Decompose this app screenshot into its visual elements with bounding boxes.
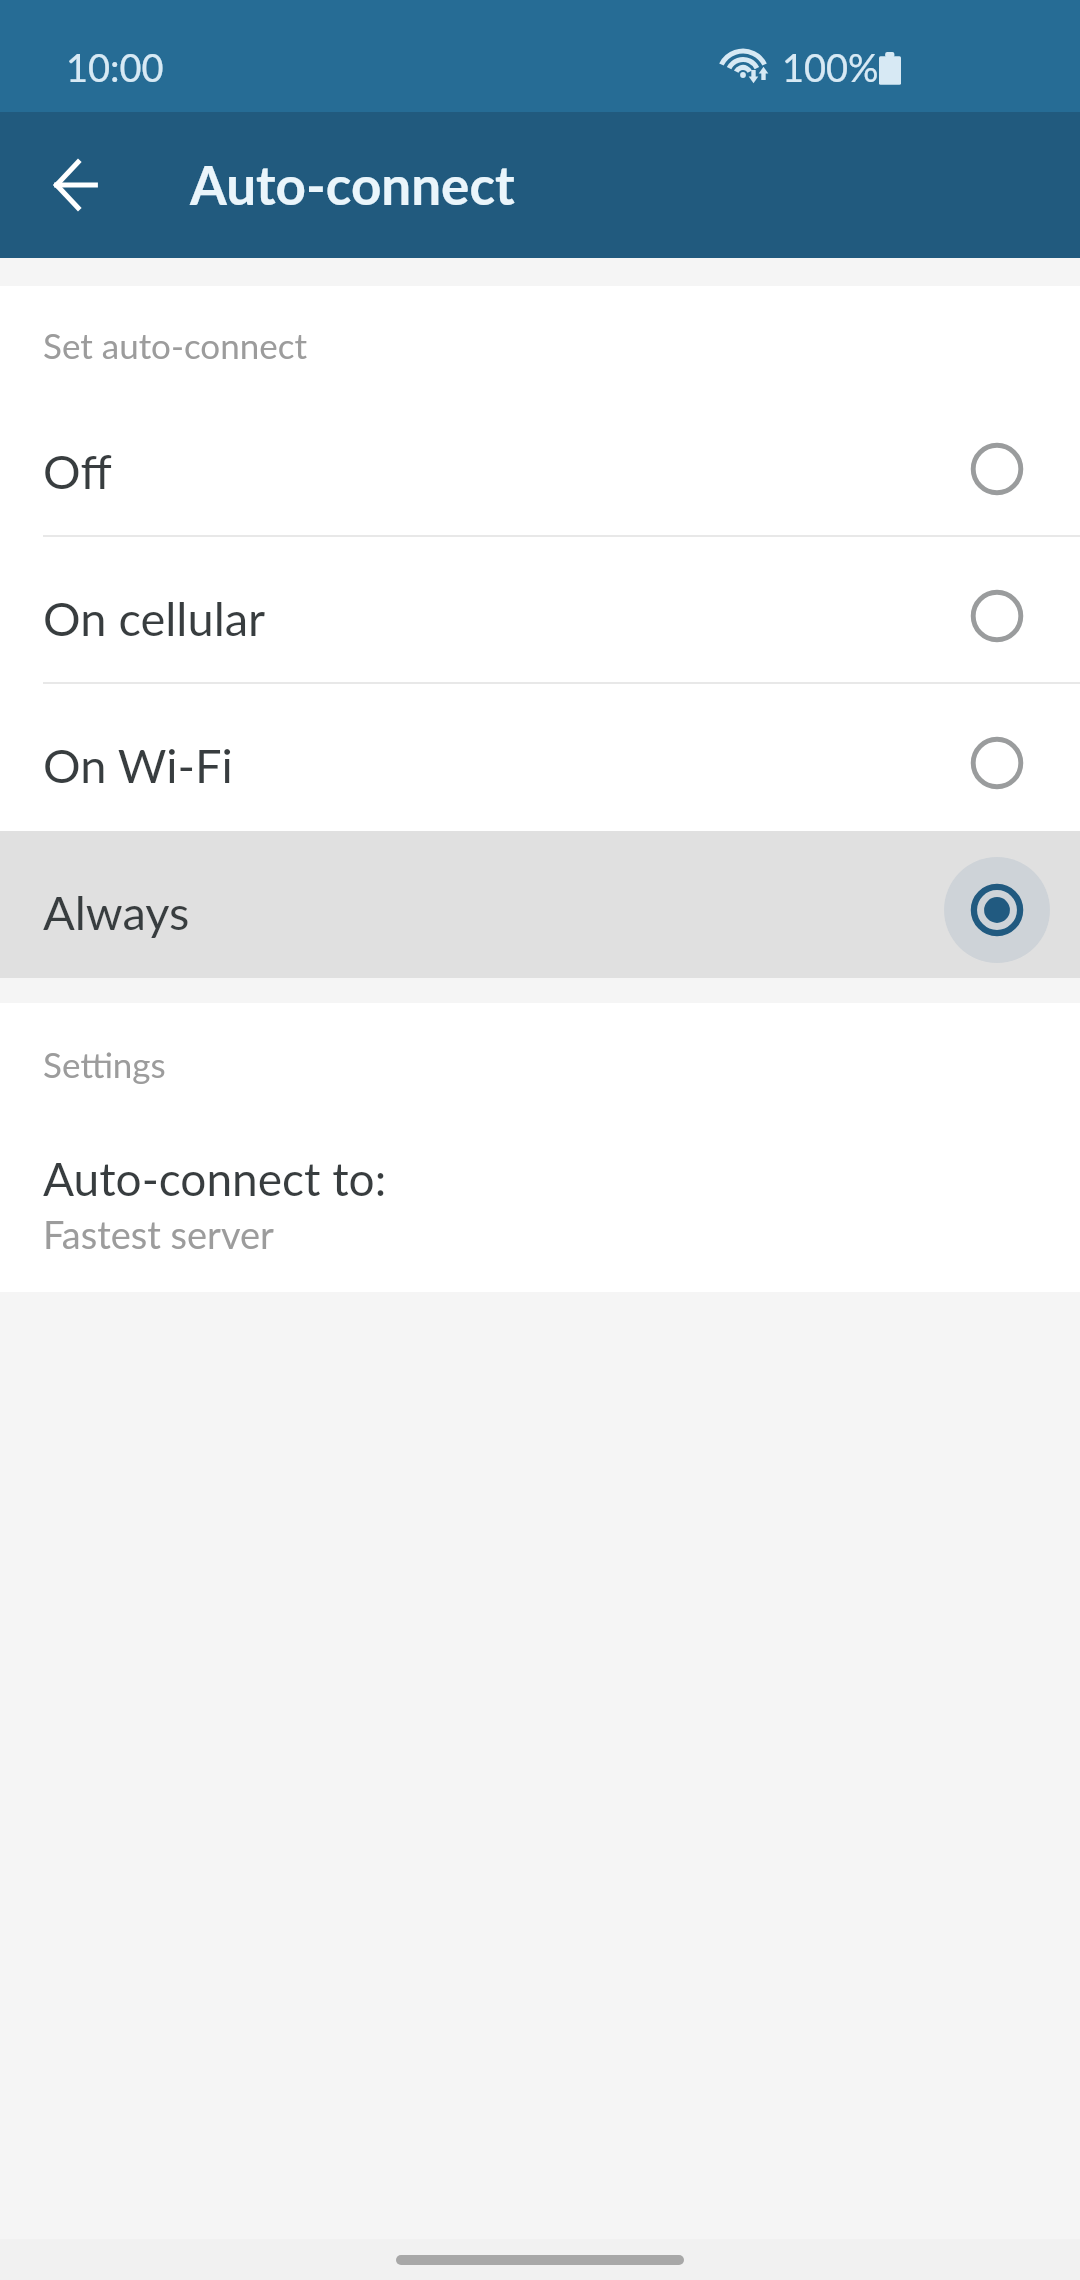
button[interactable]: Always <box>0 831 1080 978</box>
staticText: Off <box>43 443 112 499</box>
staticText: 10:00 <box>66 44 164 90</box>
staticText: Auto-connect <box>190 153 515 217</box>
staticText: On Wi-Fi <box>43 737 233 793</box>
staticText: Fastest server <box>43 1211 274 1257</box>
staticText: Settings <box>43 1043 166 1085</box>
button[interactable]: On cellular <box>0 537 1080 684</box>
staticText: Set auto-connect <box>43 324 308 366</box>
staticText: Auto-connect to: <box>43 1151 387 1206</box>
staticText: Always <box>43 884 190 940</box>
button[interactable]: On Wi-Fi <box>0 684 1080 831</box>
button[interactable]: Auto-connect to: <box>0 1110 1080 1292</box>
button[interactable]: Back <box>0 112 146 258</box>
staticText: 100% <box>782 44 879 90</box>
button[interactable]: Off <box>0 390 1080 537</box>
staticText: On cellular <box>43 590 266 646</box>
